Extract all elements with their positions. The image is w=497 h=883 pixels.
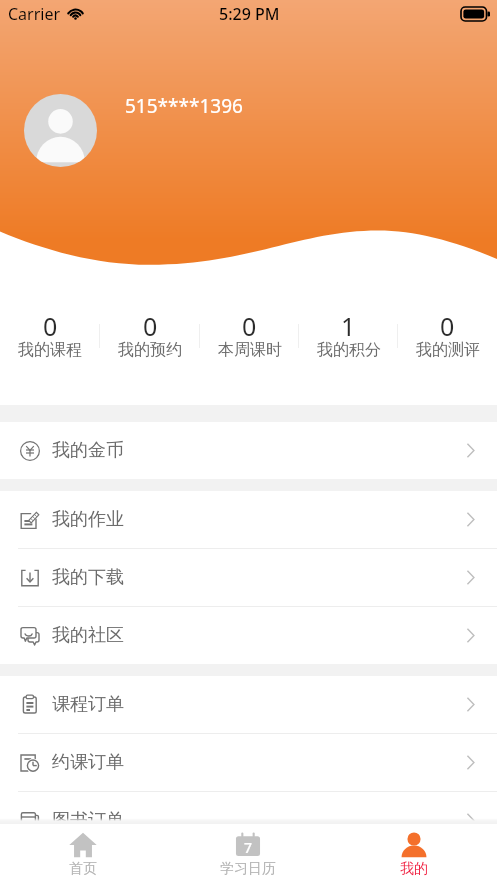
staticText: 515****1396: [125, 93, 243, 119]
button[interactable]: 0: [100, 267, 200, 405]
button[interactable]: 0: [0, 267, 100, 405]
staticText: 我的社区: [52, 624, 124, 647]
staticText: 0: [43, 309, 58, 343]
staticText: 0: [242, 309, 257, 343]
staticText: 我的下载: [52, 566, 124, 589]
staticText: 学习日历: [220, 860, 276, 878]
staticText: 我的: [400, 860, 428, 878]
staticText: 图书订单: [52, 809, 124, 832]
button[interactable]: 课程订单: [0, 676, 497, 733]
staticText: 0: [440, 309, 455, 343]
staticText: 首页: [69, 860, 97, 878]
button[interactable]: 1: [299, 267, 398, 405]
staticText: 我的金币: [52, 439, 124, 462]
button[interactable]: 首页: [0, 824, 165, 883]
staticText: 5:29 PM: [219, 3, 280, 25]
button[interactable]: 我的下载: [0, 549, 497, 606]
button[interactable]: 我的作业: [0, 491, 497, 548]
button[interactable]: Avatar: [24, 94, 97, 167]
staticText: 1: [341, 309, 356, 343]
button[interactable]: 约课订单: [0, 734, 497, 791]
button[interactable]: 0: [200, 267, 299, 405]
staticText: 课程订单: [52, 693, 124, 716]
staticText: 0: [143, 309, 158, 343]
staticText: Carrier: [8, 3, 61, 25]
staticText: 7: [244, 838, 253, 857]
staticText: 我的作业: [52, 508, 124, 531]
button[interactable]: 7: [165, 824, 331, 883]
staticText: 我的预约: [118, 340, 182, 360]
staticText: 本周课时: [218, 340, 282, 360]
button[interactable]: 我的金币: [0, 422, 497, 479]
button[interactable]: 我的社区: [0, 607, 497, 664]
staticText: 我的课程: [18, 340, 82, 360]
staticText: 我的积分: [317, 340, 381, 360]
button[interactable]: 0: [398, 267, 497, 405]
button[interactable]: 图书订单: [0, 792, 497, 849]
staticText: 我的测评: [416, 340, 480, 360]
button[interactable]: 我的: [331, 824, 497, 883]
staticText: 约课订单: [52, 751, 124, 774]
